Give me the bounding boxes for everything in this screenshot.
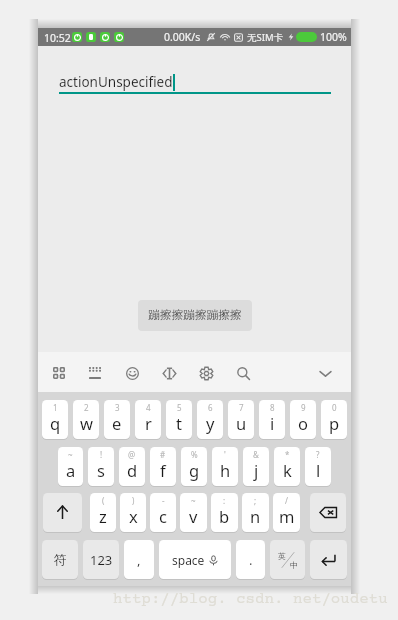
staticText: 无SIM卡 — [247, 31, 284, 44]
staticText: 蹦擦擦蹦擦蹦擦擦 — [148, 308, 242, 323]
staticText: w — [80, 412, 93, 434]
button[interactable]: ~ — [58, 447, 83, 486]
staticText: t — [176, 412, 182, 434]
staticText: p — [329, 412, 340, 434]
staticText: ; — [254, 495, 257, 506]
staticText: 4 — [146, 402, 151, 413]
button[interactable]: . — [236, 540, 265, 579]
button[interactable]: , — [124, 540, 154, 579]
staticText: ' — [224, 449, 226, 460]
staticText: 中 — [290, 560, 298, 570]
button[interactable]: Text cursor — [158, 362, 180, 384]
staticText: : — [223, 495, 226, 506]
staticText: http://blog. csdn. net/oudetu — [113, 591, 388, 609]
button[interactable]: Shift — [43, 493, 82, 532]
staticText: / — [285, 495, 288, 506]
staticText: 0.00K/s — [164, 30, 201, 44]
button[interactable]: ; — [242, 493, 269, 532]
staticText: y — [206, 412, 215, 434]
staticText: g — [189, 459, 200, 481]
staticText: ~ — [68, 449, 73, 460]
staticText: , — [137, 551, 141, 569]
staticText: 7 — [239, 402, 244, 413]
button[interactable]: & — [243, 447, 269, 486]
staticText: d — [127, 459, 138, 481]
button[interactable]: 9 — [290, 400, 316, 439]
button[interactable]: 4 — [135, 400, 161, 439]
button[interactable]: # — [150, 447, 176, 486]
staticText: * — [285, 449, 290, 460]
button[interactable]: 3 — [104, 400, 130, 439]
staticText: 10:52 — [44, 31, 71, 45]
staticText: x — [129, 505, 138, 527]
button[interactable]: 符 — [42, 540, 78, 579]
button[interactable]: @ — [119, 447, 145, 486]
staticText: 2 — [84, 402, 89, 413]
staticText: - — [162, 495, 165, 506]
staticText: 英 — [278, 551, 286, 561]
button[interactable]: - — [150, 493, 176, 532]
staticText: 6 — [208, 402, 213, 413]
staticText: f — [160, 459, 166, 481]
button[interactable]: 123 — [83, 540, 119, 579]
button[interactable]: 1 — [42, 400, 68, 439]
staticText: v — [189, 505, 198, 527]
staticText: i — [270, 412, 275, 434]
staticText: # — [160, 449, 166, 460]
button[interactable]: Apps — [48, 362, 70, 384]
button[interactable]: 5 — [166, 400, 192, 439]
button[interactable]: : — [211, 493, 238, 532]
staticText: 3 — [115, 402, 120, 413]
staticText: 0 — [332, 402, 337, 413]
staticText: . — [249, 551, 253, 569]
staticText: @ — [128, 449, 136, 460]
staticText: 100% — [320, 30, 347, 44]
button[interactable]: Hide keyboard — [314, 362, 336, 384]
staticText: 123 — [90, 551, 113, 569]
staticText: ~ — [191, 495, 196, 506]
button[interactable]: space — [159, 540, 231, 579]
button[interactable]: 6 — [197, 400, 223, 439]
staticText: j — [254, 459, 259, 481]
staticText: u — [236, 412, 247, 434]
button[interactable]: 2 — [73, 400, 99, 439]
button[interactable]: Emoji — [121, 362, 143, 384]
staticText: ! — [100, 449, 103, 460]
button[interactable]: / — [273, 493, 300, 532]
button[interactable]: ~ — [180, 493, 207, 532]
staticText: o — [298, 412, 308, 434]
staticText: r — [145, 412, 152, 434]
button[interactable]: 8 — [259, 400, 285, 439]
staticText: & — [253, 449, 259, 460]
staticText: 8 — [270, 402, 275, 413]
button[interactable]: Enter — [310, 540, 347, 579]
button[interactable]: Search — [232, 362, 254, 384]
button[interactable]: Keyboard — [84, 362, 106, 384]
button[interactable]: 7 — [228, 400, 254, 439]
button[interactable]: Backspace — [310, 493, 346, 532]
staticText: 1 — [53, 402, 58, 413]
staticText: h — [220, 459, 231, 481]
button[interactable]: ' — [212, 447, 238, 486]
button[interactable]: % — [181, 447, 207, 486]
staticText: a — [66, 459, 76, 481]
button[interactable]: Settings — [195, 362, 217, 384]
button[interactable]: ? — [305, 447, 331, 486]
staticText: ) — [132, 495, 135, 506]
staticText: % — [191, 449, 198, 460]
staticText: c — [159, 505, 167, 527]
button[interactable]: ( — [90, 493, 116, 532]
staticText: n — [250, 505, 261, 527]
button[interactable]: * — [274, 447, 300, 486]
staticText: s — [97, 459, 105, 481]
staticText: z — [99, 505, 107, 527]
button[interactable]: ) — [120, 493, 146, 532]
button[interactable]: 0 — [321, 400, 347, 439]
button[interactable]: Switch language — [270, 540, 305, 579]
button[interactable]: ! — [88, 447, 114, 486]
staticText: space — [172, 552, 205, 568]
staticText: ( — [102, 495, 105, 506]
staticText: l — [316, 459, 321, 481]
staticText: actionUnspecified — [59, 73, 173, 91]
staticText: e — [112, 412, 122, 434]
